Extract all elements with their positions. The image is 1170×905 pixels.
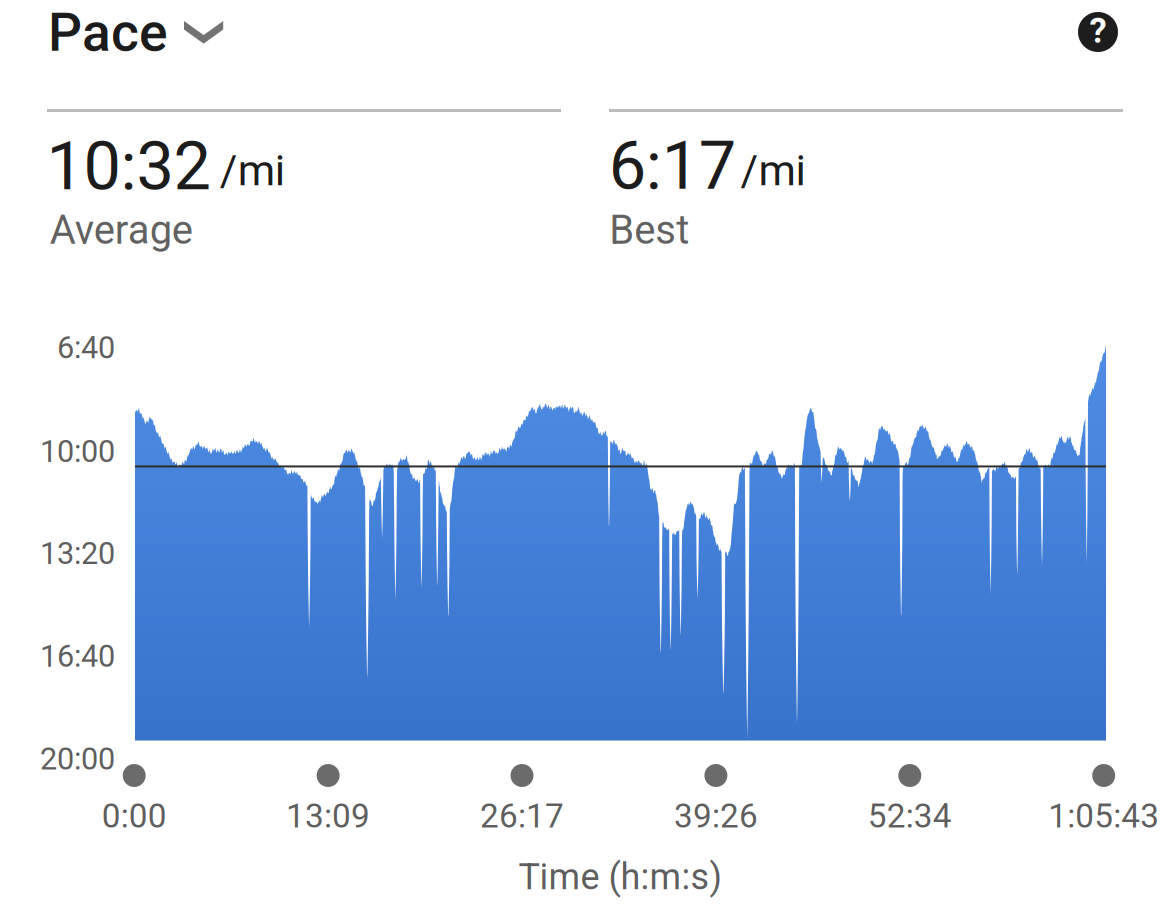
staticText: ? [1089, 11, 1106, 51]
staticText: /mi [740, 146, 805, 196]
staticText: 6:40 [57, 330, 115, 366]
staticText: 39:26 [674, 796, 758, 836]
staticText: 1:05:43 [1048, 796, 1159, 836]
staticText: /mi [220, 146, 285, 196]
staticText: 6:17 [609, 127, 736, 205]
staticText: 16:40 [40, 638, 115, 674]
button[interactable]: Help [1072, 6, 1124, 58]
staticText: 20:00 [40, 741, 115, 777]
staticText: 10:00 [40, 433, 115, 469]
staticText: 13:09 [286, 796, 370, 836]
staticText: Time (h:m:s) [518, 856, 722, 898]
staticText: 13:20 [40, 536, 115, 571]
button[interactable]: Pace [44, 0, 234, 62]
staticText: 52:34 [868, 796, 952, 836]
staticText: 10:32 [46, 127, 210, 205]
staticText: 26:17 [480, 796, 564, 836]
staticText: 0:00 [102, 796, 167, 836]
staticText: Best [609, 207, 689, 253]
staticText: Average [50, 207, 193, 253]
staticText: Pace [48, 1, 168, 64]
